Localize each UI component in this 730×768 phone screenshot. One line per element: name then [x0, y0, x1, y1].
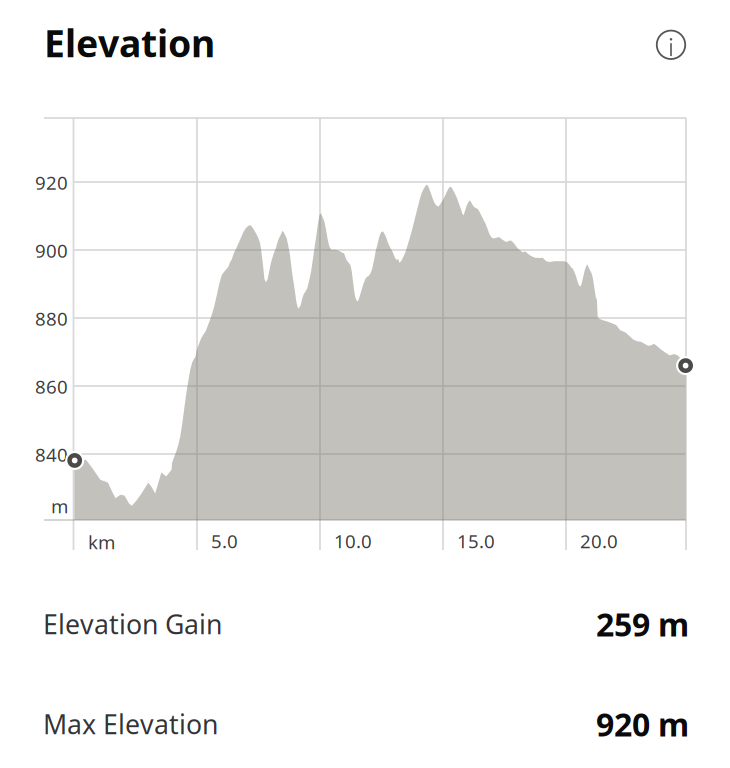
button[interactable]: Max Elevation: [0, 674, 730, 768]
staticText: 15.0: [457, 529, 495, 553]
staticText: Max Elevation: [43, 706, 218, 742]
staticText: 20.0: [580, 529, 618, 553]
staticText: 259 m: [596, 603, 689, 645]
staticText: 900: [35, 238, 68, 263]
staticText: 840: [35, 442, 68, 467]
staticText: Elevation: [44, 18, 215, 68]
staticText: 920 m: [596, 703, 689, 745]
button[interactable]: Elevation Gain: [0, 574, 730, 674]
staticText: m: [51, 494, 68, 518]
staticText: 860: [35, 374, 68, 399]
button[interactable]: Info: [648, 22, 694, 68]
staticText: 920: [35, 170, 68, 195]
staticText: 10.0: [334, 529, 372, 553]
staticText: 5.0: [211, 529, 238, 553]
staticText: Elevation Gain: [43, 606, 222, 642]
staticText: 880: [35, 306, 68, 331]
staticText: km: [88, 530, 115, 554]
